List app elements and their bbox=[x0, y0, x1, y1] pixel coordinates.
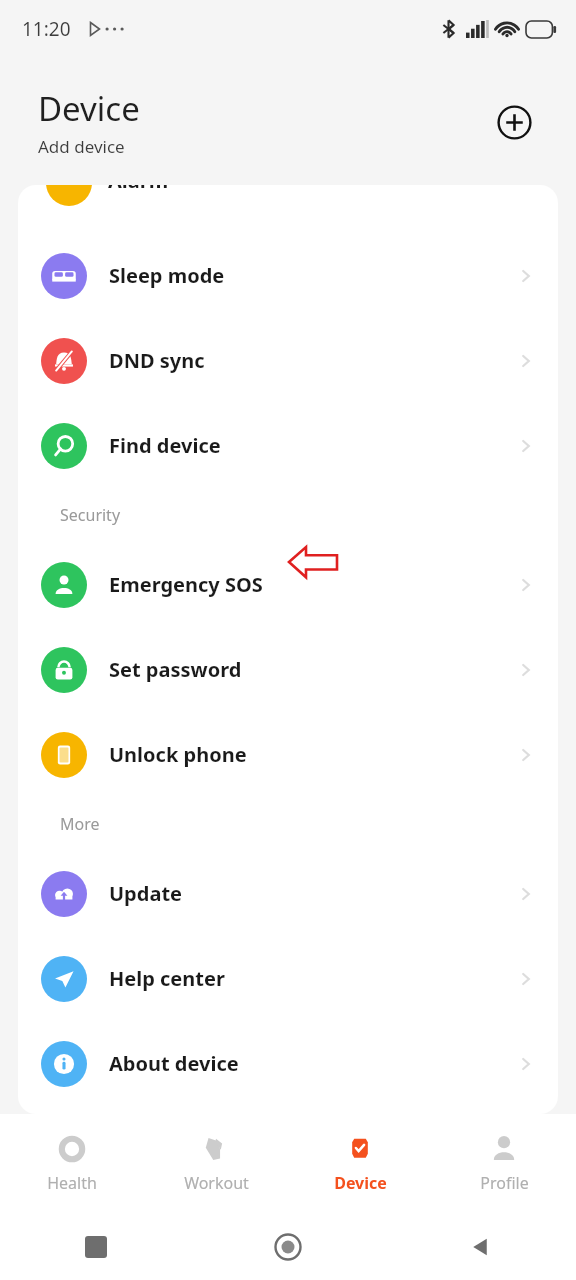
button[interactable]: Help center bbox=[18, 936, 558, 1021]
staticText: More bbox=[60, 813, 100, 835]
staticText: Device bbox=[334, 1172, 387, 1194]
button[interactable]: Health bbox=[0, 1114, 144, 1214]
button[interactable]: DND sync bbox=[18, 318, 558, 403]
button[interactable]: Profile bbox=[432, 1114, 576, 1214]
staticText: Emergency SOS bbox=[109, 571, 516, 598]
staticText: Alarm bbox=[108, 185, 169, 194]
button[interactable]: Recents bbox=[78, 1229, 114, 1265]
staticText: Workout bbox=[184, 1172, 249, 1194]
staticText: Sleep mode bbox=[109, 262, 516, 289]
staticText: Find device bbox=[109, 432, 516, 459]
button[interactable]: Device bbox=[288, 1114, 432, 1214]
staticText: Add device bbox=[38, 135, 125, 158]
button[interactable]: Update bbox=[18, 851, 558, 936]
staticText: Set password bbox=[109, 656, 516, 683]
staticText: Profile bbox=[480, 1172, 529, 1194]
staticText: Device bbox=[38, 86, 140, 131]
button[interactable]: Set password bbox=[18, 627, 558, 712]
staticText: Security bbox=[60, 504, 121, 526]
button[interactable]: Back bbox=[462, 1229, 498, 1265]
staticText: Health bbox=[47, 1172, 97, 1194]
staticText: Update bbox=[109, 880, 516, 907]
button[interactable]: Home bbox=[268, 1227, 308, 1267]
staticText: About device bbox=[109, 1050, 516, 1077]
button[interactable]: Add device bbox=[492, 100, 536, 144]
button[interactable]: Sleep mode bbox=[18, 233, 558, 318]
button[interactable]: Find device bbox=[18, 403, 558, 488]
staticText: 11:20 bbox=[22, 16, 71, 42]
staticText: Help center bbox=[109, 965, 516, 992]
button[interactable]: Workout bbox=[144, 1114, 288, 1214]
button[interactable]: About device bbox=[18, 1021, 558, 1106]
staticText: DND sync bbox=[109, 347, 516, 374]
button[interactable]: Emergency SOS bbox=[18, 542, 558, 627]
button[interactable]: Unlock phone bbox=[18, 712, 558, 797]
staticText: Unlock phone bbox=[109, 741, 516, 768]
